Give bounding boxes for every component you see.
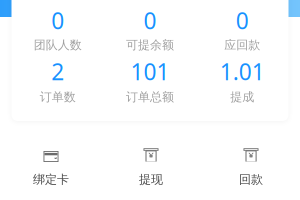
staticText: 回款: [239, 172, 263, 187]
button[interactable]: 提现: [101, 148, 201, 194]
button[interactable]: 回款: [201, 148, 300, 194]
staticText: 1.01: [220, 56, 265, 86]
staticText: 可提余额: [126, 38, 174, 52]
staticText: 提成: [230, 90, 254, 104]
staticText: 0: [51, 5, 64, 35]
staticText: 2: [51, 56, 64, 86]
staticText: 订单总额: [126, 90, 174, 104]
staticText: 提现: [139, 172, 163, 187]
staticText: 0: [236, 5, 249, 35]
staticText: 订单数: [40, 90, 76, 104]
staticText: 绑定卡: [33, 172, 69, 187]
staticText: 应回款: [224, 38, 260, 52]
button[interactable]: 绑定卡: [1, 148, 101, 194]
staticText: 团队人数: [34, 38, 82, 52]
staticText: 101: [130, 56, 169, 86]
staticText: 0: [143, 5, 156, 35]
